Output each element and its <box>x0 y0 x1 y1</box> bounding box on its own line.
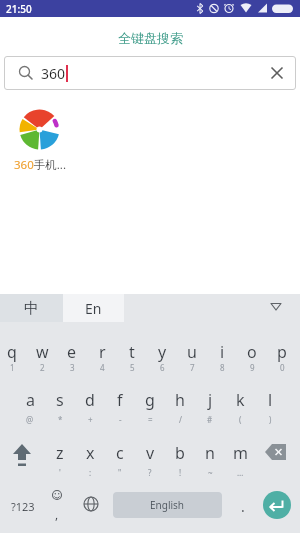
staticText: 2 <box>40 362 45 373</box>
staticText: 6 <box>160 362 165 373</box>
button[interactable]: English <box>113 492 222 518</box>
button[interactable] <box>0 427 45 480</box>
button[interactable]: o <box>237 322 267 375</box>
staticText: s <box>56 389 64 411</box>
staticText: ' <box>59 467 61 478</box>
staticText: w <box>36 341 49 363</box>
staticText: f <box>117 389 123 411</box>
button[interactable]: b <box>165 427 195 480</box>
staticText: + <box>88 414 93 425</box>
button[interactable]: ?123 <box>2 480 44 533</box>
staticText: ?123 <box>11 499 35 514</box>
staticText: u <box>187 341 197 363</box>
button[interactable]: n <box>195 427 225 480</box>
button[interactable]: . <box>231 480 255 533</box>
button[interactable]: En <box>63 294 124 322</box>
button[interactable]: , <box>42 480 72 533</box>
staticText: 5 <box>130 362 135 373</box>
staticText: 360 <box>41 64 66 83</box>
button[interactable]: r <box>87 322 117 375</box>
staticText: 7 <box>190 362 195 373</box>
staticText: 0 <box>280 362 285 373</box>
staticText: 21:50 <box>6 2 32 16</box>
button[interactable]: j <box>195 375 225 427</box>
button[interactable]: a <box>15 375 45 427</box>
button[interactable]: l <box>255 375 285 427</box>
staticText: 360手机... <box>14 157 66 173</box>
staticText: 8 <box>220 362 225 373</box>
staticText: x <box>86 442 95 464</box>
staticText: / <box>179 414 182 425</box>
staticText: ( <box>239 414 242 425</box>
button[interactable]: s <box>45 375 75 427</box>
staticText: z <box>56 442 64 464</box>
button[interactable]: 360手机... <box>8 100 70 180</box>
staticText: - <box>119 414 122 425</box>
staticText: k <box>236 389 245 411</box>
button[interactable]: t <box>117 322 147 375</box>
button[interactable]: g <box>135 375 165 427</box>
staticText: j <box>208 389 213 411</box>
staticText: . <box>241 497 245 516</box>
button[interactable]: q <box>0 322 27 375</box>
button[interactable] <box>263 491 291 519</box>
staticText: 3 <box>70 362 75 373</box>
button[interactable] <box>262 294 290 322</box>
staticText: English <box>150 498 185 512</box>
button[interactable]: h <box>165 375 195 427</box>
staticText: 9 <box>250 362 255 373</box>
staticText: i <box>220 341 225 363</box>
button[interactable] <box>76 480 106 533</box>
button[interactable]: f <box>105 375 135 427</box>
staticText: g <box>145 389 155 411</box>
button[interactable]: 360 <box>4 56 296 90</box>
staticText: h <box>175 389 185 411</box>
staticText: " <box>118 467 122 478</box>
staticText: e <box>67 341 77 363</box>
staticText: y <box>158 341 167 363</box>
staticText: # <box>207 414 213 425</box>
staticText: t <box>129 341 135 363</box>
staticText: ~ <box>208 467 213 478</box>
staticText: ! <box>179 467 182 478</box>
button[interactable]: c <box>105 427 135 480</box>
button[interactable]: w <box>27 322 57 375</box>
button[interactable]: u <box>177 322 207 375</box>
staticText: q <box>7 341 17 363</box>
staticText: 1 <box>10 362 15 373</box>
button[interactable]: z <box>45 427 75 480</box>
staticText: En <box>85 299 102 318</box>
staticText: ) <box>269 414 272 425</box>
staticText: n <box>205 442 215 464</box>
button[interactable]: v <box>135 427 165 480</box>
staticText: ? <box>148 467 152 478</box>
staticText: @ <box>26 414 34 425</box>
button[interactable]: e <box>57 322 87 375</box>
staticText: … <box>237 467 244 478</box>
staticText: d <box>85 389 95 411</box>
staticText: 全键盘搜索 <box>118 30 183 46</box>
staticText: a <box>26 389 35 411</box>
button[interactable]: m <box>225 427 255 480</box>
staticText: o <box>247 341 257 363</box>
button[interactable]: p <box>267 322 297 375</box>
staticText: 中 <box>24 299 39 318</box>
staticText: 4 <box>100 362 105 373</box>
button[interactable]: x <box>75 427 105 480</box>
staticText: * <box>58 414 63 425</box>
button[interactable]: d <box>75 375 105 427</box>
staticText: , <box>55 506 59 522</box>
staticText: r <box>99 341 106 363</box>
staticText: c <box>116 442 124 464</box>
button[interactable] <box>255 427 300 480</box>
staticText: l <box>268 389 273 411</box>
staticText: b <box>175 442 185 464</box>
button[interactable]: y <box>147 322 177 375</box>
staticText: p <box>277 341 287 363</box>
staticText: = <box>148 414 153 425</box>
button[interactable]: 中 <box>0 294 63 322</box>
staticText: m <box>233 442 248 464</box>
button[interactable]: k <box>225 375 255 427</box>
button[interactable]: i <box>207 322 237 375</box>
staticText: v <box>146 442 155 464</box>
